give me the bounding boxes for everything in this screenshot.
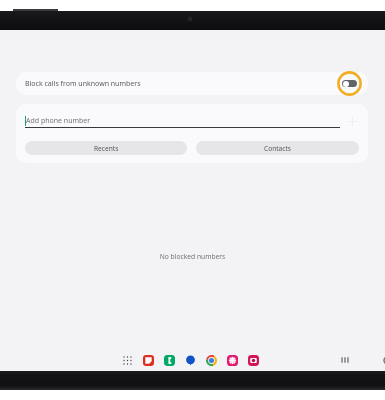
- button[interactable]: Block calls toggle: [337, 71, 362, 96]
- staticText: Block calls from unknown numbers: [25, 79, 141, 89]
- staticText: Recents: [94, 144, 119, 153]
- staticText: No blocked numbers: [0, 252, 385, 261]
- button[interactable]: Chrome: [205, 354, 217, 366]
- button[interactable]: Photos: [226, 354, 238, 366]
- button[interactable]: Home: [380, 353, 385, 367]
- button[interactable]: Phone: [163, 354, 175, 366]
- button[interactable]: Messages: [184, 354, 196, 366]
- staticText: Add phone number: [26, 116, 91, 126]
- staticText: Contacts: [264, 144, 292, 153]
- button[interactable]: Contacts: [196, 141, 359, 155]
- button[interactable]: Notes: [142, 354, 154, 366]
- button[interactable]: Block calls from unknown numbers: [16, 72, 368, 95]
- button[interactable]: Recents: [25, 141, 187, 155]
- button[interactable]: Instagram: [247, 354, 259, 366]
- button[interactable]: Recent apps: [338, 353, 352, 367]
- button[interactable]: All apps: [121, 354, 133, 366]
